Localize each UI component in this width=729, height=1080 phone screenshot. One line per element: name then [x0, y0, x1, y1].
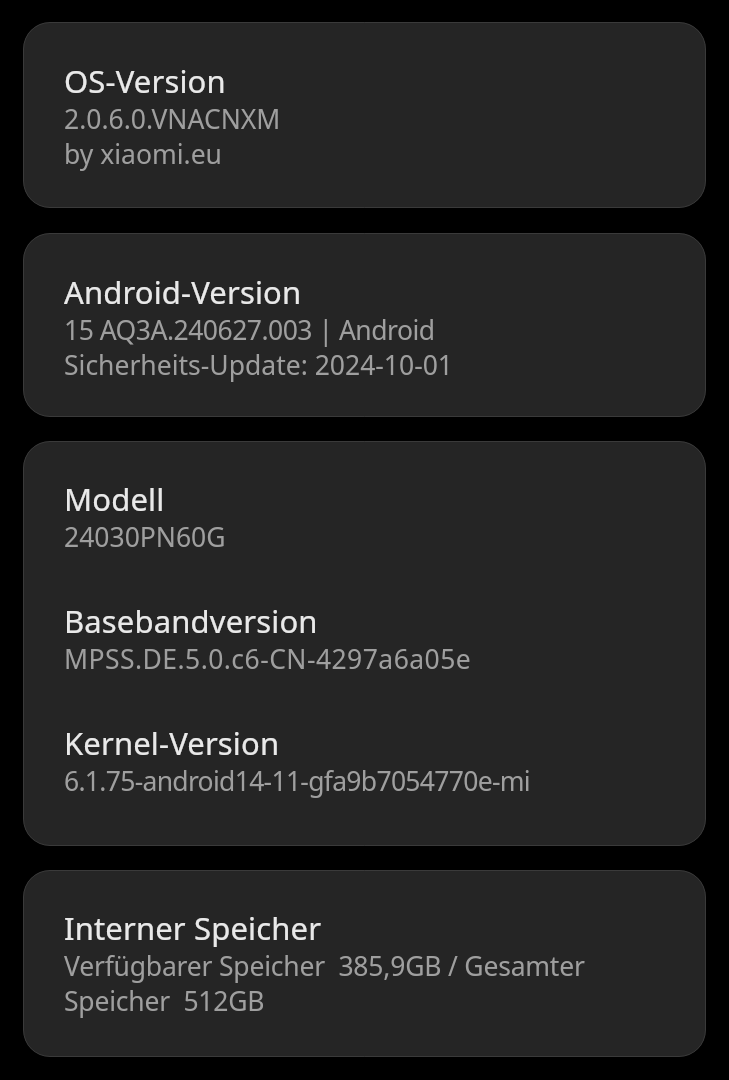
button[interactable]: Interner Speicher — [23, 870, 706, 1019]
button[interactable]: Kernel-Version — [23, 699, 706, 799]
staticText: Modell — [64, 477, 165, 520]
button[interactable]: Modell — [23, 441, 706, 577]
staticText: 6.1.75-android14-11-gfa9b7054770e-mi — [64, 764, 530, 799]
staticText: Android-Version — [64, 270, 302, 313]
staticText: 24030PN60G — [64, 520, 226, 555]
staticText: Sicherheits-Update: 2024-10-01 — [64, 348, 453, 383]
staticText: MPSS.DE.5.0.c6-CN-4297a6a05e — [64, 642, 472, 677]
staticText: Basebandversion — [64, 599, 318, 642]
staticText: 2.0.6.0.VNACNXM — [64, 102, 281, 137]
staticText: Interner Speicher — [64, 906, 322, 949]
button[interactable]: OS-Version — [23, 22, 706, 172]
button[interactable]: Basebandversion — [23, 577, 706, 699]
button[interactable]: Android-Version — [23, 233, 706, 383]
staticText: 15 AQ3A.240627.003 | Android — [64, 313, 435, 348]
staticText: Kernel-Version — [64, 721, 280, 764]
staticText: Verfügbarer Speicher 385,9GB / Gesamter … — [64, 949, 678, 1019]
staticText: by xiaomi.eu — [64, 137, 222, 172]
staticText: OS-Version — [64, 59, 226, 102]
